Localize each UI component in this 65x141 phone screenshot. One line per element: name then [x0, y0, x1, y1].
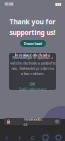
button[interactable]: Back	[0, 133, 13, 141]
staticText: Download	[23, 41, 42, 46]
staticText: ›	[18, 132, 20, 141]
staticText: Nainstalujte si aplikaci z našeho obchod…	[9, 55, 55, 76]
staticText: Další informace	[18, 86, 46, 92]
button[interactable]: Menu	[52, 133, 65, 141]
staticText: ▮▮▮	[55, 2, 61, 6]
button[interactable]: OK	[29, 81, 35, 86]
button[interactable]: Download	[20, 40, 46, 47]
staticText: instaloader.cz	[23, 116, 42, 127]
staticText: 10:08	[4, 1, 13, 7]
staticText: Instalace obchodu	[14, 52, 50, 58]
staticText: OK	[29, 81, 35, 87]
button[interactable]: Další informace	[18, 86, 46, 91]
button[interactable]: Home	[26, 133, 39, 141]
button[interactable]: Forward	[13, 133, 26, 141]
staticText: supporting us!	[9, 28, 55, 37]
staticText: ⌂	[30, 134, 34, 141]
staticText: 🔒	[6, 119, 11, 124]
button[interactable]: Tabs	[39, 133, 52, 141]
staticText: Thank you for	[9, 17, 55, 26]
staticText: ‹	[5, 132, 7, 141]
